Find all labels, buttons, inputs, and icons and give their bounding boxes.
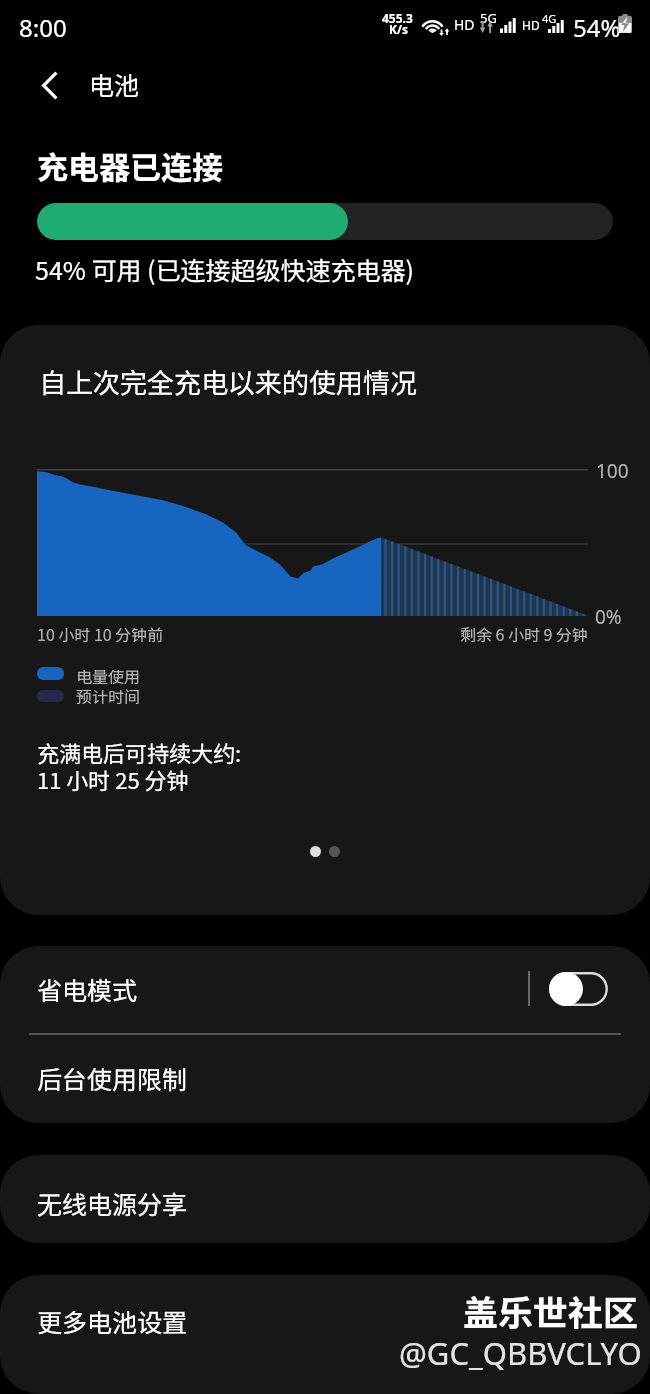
staticText: 0% bbox=[595, 604, 622, 630]
staticText: 自上次完全充电以来的使用情况 bbox=[39, 362, 417, 401]
button[interactable]: Power saving mode toggle bbox=[549, 972, 608, 1006]
button[interactable]: Back bbox=[20, 56, 80, 114]
staticText: 电池 bbox=[89, 66, 140, 102]
button[interactable]: 无线电源分享 bbox=[0, 1155, 650, 1243]
staticText: 54% 可用 (已连接超级快速充电器) bbox=[35, 251, 414, 287]
staticText: 电量使用 bbox=[76, 664, 141, 687]
staticText: 后台使用限制 bbox=[37, 1060, 188, 1096]
staticText: 100 bbox=[596, 458, 629, 484]
staticText: 54% bbox=[573, 11, 621, 44]
button[interactable]: 更多电池设置 bbox=[0, 1275, 650, 1394]
staticText: 11 小时 25 分钟 bbox=[37, 763, 189, 795]
button[interactable]: 后台使用限制 bbox=[0, 1034, 650, 1123]
staticText: 4G bbox=[542, 11, 557, 26]
staticText: 省电模式 bbox=[37, 971, 138, 1007]
staticText: 充满电后可持续大约: bbox=[37, 736, 242, 768]
staticText: K/s bbox=[389, 21, 408, 37]
staticText: 10 小时 10 分钟前 bbox=[37, 622, 164, 645]
staticText: 盖乐世社区 bbox=[463, 1285, 639, 1336]
staticText: HD bbox=[522, 17, 540, 33]
staticText: 剩余 6 小时 9 分钟 bbox=[459, 622, 588, 645]
staticText: 455.3 bbox=[382, 10, 413, 26]
staticText: 5G bbox=[480, 9, 497, 27]
staticText: 无线电源分享 bbox=[37, 1185, 188, 1221]
staticText: 更多电池设置 bbox=[37, 1303, 188, 1339]
button[interactable]: 省电模式 bbox=[0, 946, 650, 1034]
staticText: 充电器已连接 bbox=[37, 143, 223, 188]
staticText: 预计时间 bbox=[76, 684, 141, 707]
staticText: 8:00 bbox=[19, 11, 67, 44]
staticText: @GC_QBBVCLYO bbox=[399, 1332, 642, 1374]
staticText: HD bbox=[454, 15, 475, 34]
